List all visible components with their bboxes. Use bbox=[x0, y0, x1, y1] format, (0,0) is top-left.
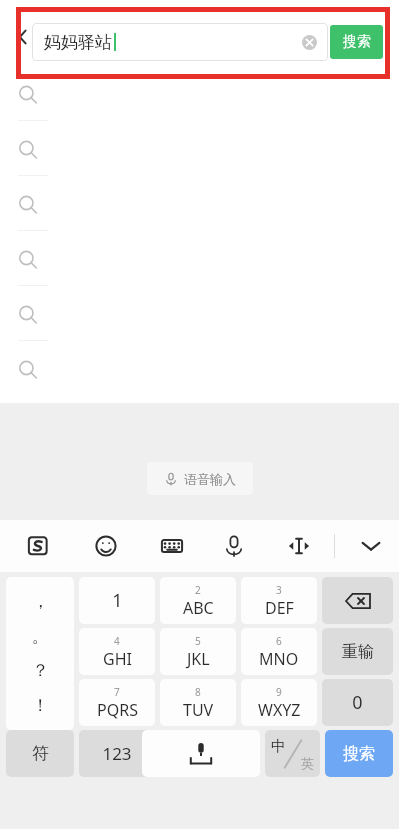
staticText: WXYZ bbox=[258, 699, 301, 721]
staticText: 0 bbox=[352, 690, 363, 715]
staticText: ！ bbox=[32, 695, 49, 716]
button[interactable]: 符 bbox=[6, 730, 74, 777]
button[interactable]: Clear bbox=[298, 31, 320, 53]
staticText: 重输 bbox=[342, 642, 374, 662]
staticText: ABC bbox=[183, 597, 214, 619]
staticText: 符 bbox=[32, 743, 49, 764]
staticText: TUV bbox=[183, 699, 214, 721]
staticText: 语音输入 bbox=[184, 471, 236, 487]
staticText: GHI bbox=[103, 648, 132, 670]
button[interactable] bbox=[0, 178, 399, 232]
button[interactable]: 重输 bbox=[322, 628, 393, 675]
button[interactable] bbox=[0, 233, 399, 287]
button[interactable]: Emoji bbox=[85, 525, 127, 567]
button[interactable]: 8 bbox=[160, 679, 236, 726]
staticText: MNO bbox=[259, 648, 299, 670]
staticText: ， bbox=[32, 591, 49, 612]
button[interactable]: 妈妈驿站 bbox=[32, 23, 328, 61]
button[interactable]: Space / voice bbox=[142, 730, 260, 777]
staticText: PQRS bbox=[97, 699, 138, 721]
button[interactable]: Keyboard layout bbox=[151, 525, 193, 567]
button[interactable]: 搜索 bbox=[330, 25, 383, 59]
button[interactable]: 6 bbox=[241, 628, 317, 675]
button[interactable]: 7 bbox=[79, 679, 155, 726]
staticText: 9 bbox=[276, 685, 282, 699]
button[interactable]: 4 bbox=[79, 628, 155, 675]
button[interactable]: Back bbox=[10, 24, 36, 50]
staticText: 7 bbox=[114, 685, 120, 699]
staticText: 妈妈驿站 bbox=[44, 32, 112, 53]
button[interactable] bbox=[0, 343, 399, 397]
button[interactable]: 搜索 bbox=[325, 730, 393, 777]
staticText: ？ bbox=[32, 660, 49, 681]
staticText: 6 bbox=[276, 634, 282, 648]
button[interactable]: Voice input bbox=[213, 525, 255, 567]
button[interactable]: ， bbox=[6, 577, 74, 730]
button[interactable]: 0 bbox=[322, 679, 393, 726]
staticText: 3 bbox=[276, 583, 282, 597]
button[interactable]: Input method bbox=[17, 525, 59, 567]
staticText: 1 bbox=[112, 588, 123, 613]
staticText: 2 bbox=[195, 583, 201, 597]
staticText: DEF bbox=[265, 597, 294, 619]
staticText: 4 bbox=[114, 634, 120, 648]
button[interactable]: 5 bbox=[160, 628, 236, 675]
button[interactable] bbox=[0, 68, 399, 122]
staticText: JKL bbox=[187, 648, 210, 670]
staticText: 。 bbox=[32, 626, 49, 647]
button[interactable]: 语音输入 bbox=[147, 462, 253, 495]
button[interactable]: 3 bbox=[241, 577, 317, 624]
button[interactable]: 9 bbox=[241, 679, 317, 726]
button[interactable] bbox=[0, 123, 399, 177]
button[interactable]: Hide keyboard bbox=[350, 525, 392, 567]
staticText: 搜索 bbox=[343, 33, 371, 51]
button[interactable]: 中 bbox=[265, 730, 320, 777]
staticText: 英 bbox=[301, 755, 314, 771]
button[interactable]: Backspace bbox=[322, 577, 393, 624]
button[interactable]: Cursor control bbox=[278, 525, 320, 567]
staticText: 中 bbox=[271, 737, 286, 756]
staticText: 8 bbox=[195, 685, 201, 699]
button[interactable]: 1 bbox=[79, 577, 155, 624]
button[interactable]: 123 bbox=[79, 730, 155, 777]
staticText: 5 bbox=[195, 634, 201, 648]
button[interactable]: 2 bbox=[160, 577, 236, 624]
staticText: 搜索 bbox=[343, 744, 375, 764]
button[interactable] bbox=[0, 288, 399, 342]
staticText: 123 bbox=[102, 742, 132, 765]
